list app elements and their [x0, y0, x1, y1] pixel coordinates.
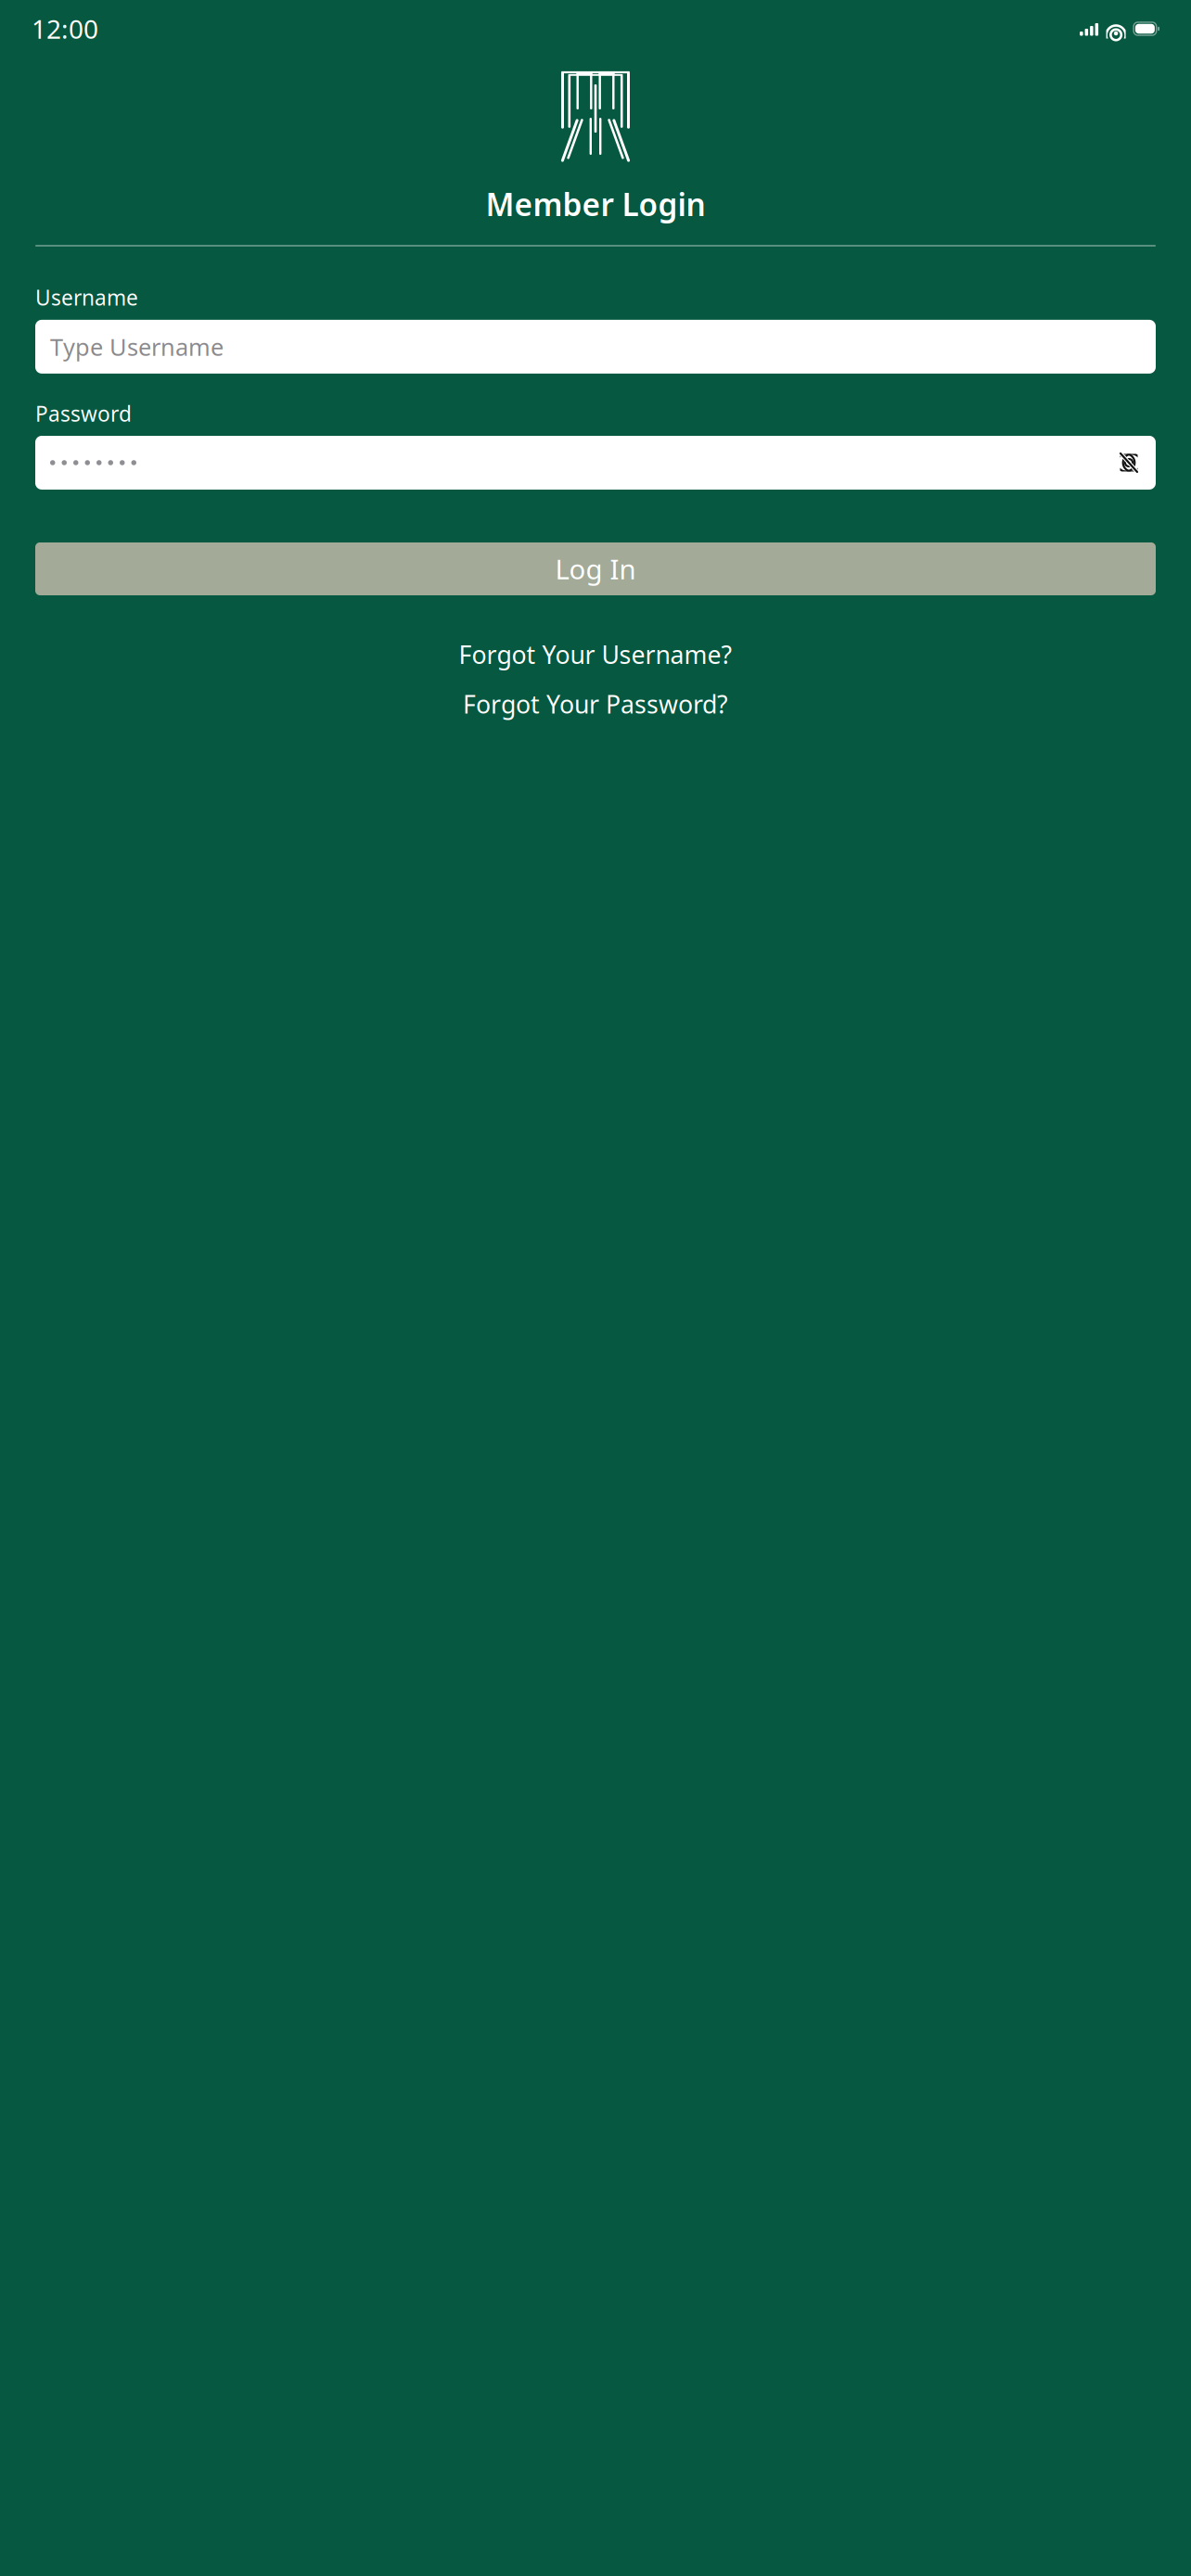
button[interactable]: Show password [1117, 451, 1141, 475]
button[interactable] [35, 436, 1156, 490]
staticText: Forgot Your Password? [463, 687, 728, 720]
staticText: Log In [555, 551, 636, 587]
button[interactable]: Type Username [35, 320, 1156, 374]
staticText: Type Username [50, 331, 224, 362]
button[interactable]: Log In [35, 542, 1156, 595]
staticText: Password [35, 400, 132, 427]
button[interactable]: Forgot Your Username? [449, 634, 742, 675]
staticText: Username [35, 284, 138, 311]
staticText: 12:00 [32, 11, 98, 46]
button[interactable]: Forgot Your Password? [454, 684, 737, 724]
staticText: Member Login [486, 184, 705, 225]
staticText: Forgot Your Username? [459, 638, 732, 671]
